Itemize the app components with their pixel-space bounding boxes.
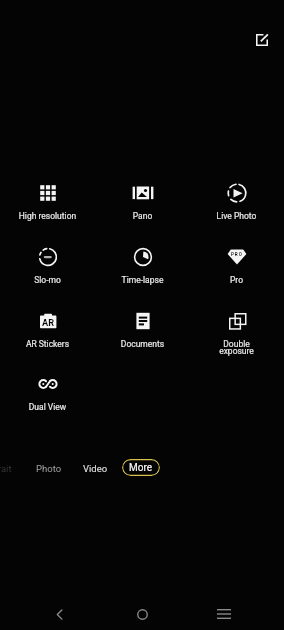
button[interactable]: Recent apps xyxy=(206,598,242,630)
button[interactable]: Photo xyxy=(26,457,71,479)
staticText: AR Stickers xyxy=(17,339,78,349)
button[interactable]: Live Photo xyxy=(189,179,284,225)
button[interactable]: Double exposure xyxy=(189,307,284,353)
button[interactable]: Portrait xyxy=(0,457,18,479)
staticText: Photo xyxy=(36,463,62,474)
staticText: Pro xyxy=(206,275,267,285)
button[interactable]: Video xyxy=(73,457,118,479)
button[interactable]: Pano xyxy=(95,179,190,225)
staticText: PRO xyxy=(231,252,243,257)
button[interactable]: Back xyxy=(41,598,77,630)
staticText: Time-lapse xyxy=(112,275,173,285)
button[interactable]: High resolution xyxy=(0,179,95,225)
staticText: Slo-mo xyxy=(17,275,78,285)
staticText: High resolution xyxy=(17,211,78,221)
button[interactable]: PRO xyxy=(189,243,284,289)
staticText: Pano xyxy=(112,211,173,221)
button[interactable]: Slo-mo xyxy=(0,243,95,289)
button[interactable]: Time-lapse xyxy=(95,243,190,289)
button[interactable]: More xyxy=(122,459,160,476)
button[interactable]: Dual View xyxy=(0,370,95,416)
staticText: Documents xyxy=(112,339,173,349)
staticText: Dual View xyxy=(17,402,78,412)
staticText: Video xyxy=(83,463,108,474)
staticText: Double exposure xyxy=(206,339,267,356)
button[interactable]: Home xyxy=(124,598,160,630)
button[interactable]: AR xyxy=(0,307,95,353)
staticText: Live Photo xyxy=(206,211,267,221)
staticText: Portrait xyxy=(0,463,12,474)
staticText: More xyxy=(129,462,153,474)
staticText: AR xyxy=(42,317,55,328)
button[interactable]: Edit camera modes xyxy=(249,27,274,52)
button[interactable]: Documents xyxy=(95,307,190,353)
